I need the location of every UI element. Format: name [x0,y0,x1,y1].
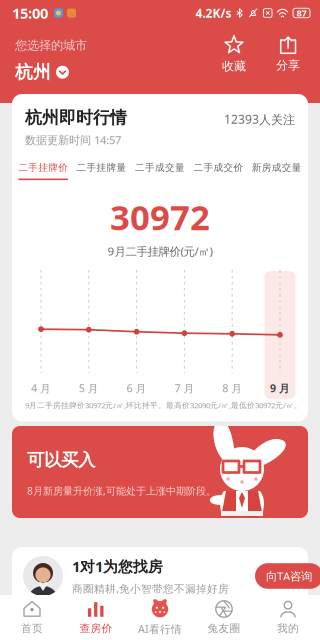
staticText: 分享 [276,58,300,73]
staticText: 数据更新时间 14:57 [25,132,121,147]
staticText: 首页 [21,622,43,635]
staticText: 杭州 [15,61,51,83]
staticText: 8 月 [222,381,242,395]
staticText: 8月新房量升价涨,可能处于上涨中期阶段。 [27,484,216,498]
staticText: 30972 [110,193,210,240]
staticText: AI看行情 [138,622,182,636]
button[interactable]: 二手挂牌价 [14,161,72,180]
staticText: 二手成交价 [193,161,243,173]
staticText: 二手挂牌量 [77,161,127,173]
staticText: 4 月 [31,381,51,395]
staticText: 新房成交量 [252,161,302,173]
button[interactable]: 二手成交价 [189,161,248,180]
staticText: 15:00 [12,3,48,23]
button[interactable]: 首页 [0,595,64,640]
staticText: 收藏 [222,59,246,74]
staticText: 7 月 [174,381,194,395]
staticText: 1对1为您找房 [72,556,163,576]
staticText: 兔友圈 [207,622,240,635]
staticText: 9月二手房挂牌价30972元/㎡,环比持平。最高价32090元/㎡,最低价309… [25,400,302,410]
button[interactable]: 向TA咨询 [255,563,320,589]
button[interactable]: 收藏 [215,23,253,85]
button[interactable]: 查房价 [64,595,128,640]
staticText: 可以买入 [27,449,95,471]
staticText: 5 月 [79,381,99,395]
staticText: 二手挂牌价 [18,161,68,173]
staticText: 您选择的城市 [15,38,87,53]
staticText: 二手成交量 [135,161,185,173]
button[interactable]: 二手成交量 [131,161,189,180]
button[interactable]: 二手挂牌量 [72,161,131,180]
staticText: 向TA咨询 [266,568,312,584]
button[interactable]: 新房成交量 [248,161,306,180]
staticText: 9月二手挂牌价(元/㎡) [107,243,212,259]
staticText: 6 月 [127,381,147,395]
staticText: 杭州即时行情 [25,107,127,128]
staticText: 4.2K/s [195,5,231,21]
staticText: 9 月 [270,381,290,395]
staticText: 12393人关注 [224,111,295,127]
staticText: 我的 [277,622,299,635]
button[interactable]: 分享 [269,23,307,85]
button[interactable]: 我的 [256,595,320,640]
button[interactable]: AI看行情 [128,595,192,640]
staticText: 商圈精耕,免小智带您不漏掉好房 [72,581,229,596]
button[interactable]: 兔友圈 [192,595,256,640]
staticText: 查房价 [79,622,112,635]
staticText: 87 [296,7,306,19]
